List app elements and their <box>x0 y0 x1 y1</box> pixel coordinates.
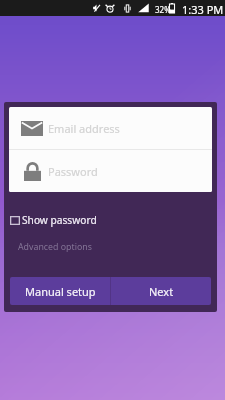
other: Vibrate <box>124 4 131 13</box>
button[interactable]: Show password <box>8 211 99 229</box>
staticText: 1:33 PM <box>182 2 224 17</box>
staticText: Show password <box>22 213 97 227</box>
other: Silent <box>93 4 100 12</box>
staticText: Email address <box>48 121 120 136</box>
staticText: 32% <box>155 4 171 15</box>
button[interactable]: Email address <box>9 107 212 149</box>
button[interactable]: Manual setup <box>10 277 110 305</box>
other: Alarm set <box>106 4 114 13</box>
staticText: Manual setup <box>25 284 96 299</box>
button[interactable]: Password <box>9 150 212 192</box>
button[interactable]: Advanced options <box>16 238 94 256</box>
staticText: Next <box>149 284 174 299</box>
button[interactable]: Next <box>111 277 211 305</box>
staticText: Password <box>48 164 98 179</box>
